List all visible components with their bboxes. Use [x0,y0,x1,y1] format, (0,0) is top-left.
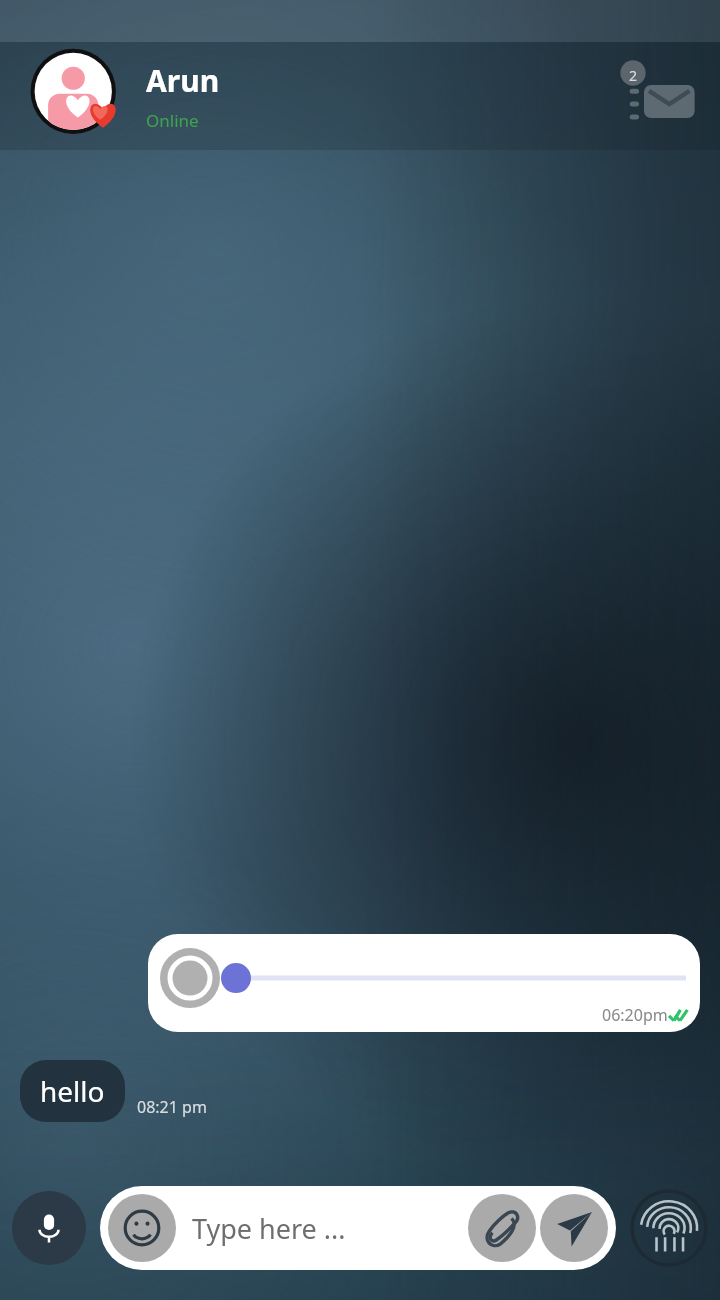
staticText: Online [146,109,199,132]
staticText: Type here ... [192,1210,468,1247]
staticText: 08:21 pm [137,1096,207,1118]
button[interactable]: Emoji [108,1194,176,1262]
button[interactable]: 06:20pm [148,934,700,1032]
staticText: Arun [146,60,220,101]
button[interactable]: Attach file [468,1194,536,1262]
button[interactable]: Send [540,1194,608,1262]
button[interactable]: hello [20,1060,125,1122]
button[interactable]: Record voice message [12,1191,86,1265]
staticText: 2 [629,66,638,85]
button[interactable]: Emoji [100,1186,616,1270]
button[interactable]: Messages [600,50,710,142]
button[interactable]: Fingerprint lock [630,1189,708,1267]
button[interactable]: Profile photo [30,50,122,142]
staticText: 06:20pm [602,1004,668,1026]
staticText: hello [40,1072,105,1110]
